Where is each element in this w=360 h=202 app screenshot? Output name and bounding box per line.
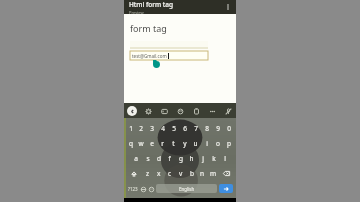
staticText: English: [179, 186, 195, 192]
staticText: h: [189, 154, 194, 163]
button[interactable]: q: [126, 136, 136, 151]
button[interactable]: c: [164, 166, 175, 181]
staticText: a: [134, 154, 138, 163]
button[interactable]: k: [208, 151, 219, 166]
button[interactable]: 7: [190, 120, 201, 136]
button[interactable]: 6: [179, 120, 190, 136]
button[interactable]: More: [207, 106, 217, 116]
staticText: l: [224, 154, 226, 163]
button[interactable]: x: [153, 166, 164, 181]
staticText: ?123: [128, 186, 138, 192]
staticText: x: [157, 169, 161, 178]
button[interactable]: v: [175, 166, 186, 181]
button[interactable]: m: [208, 166, 219, 181]
button[interactable]: 4: [157, 120, 168, 136]
button[interactable]: z: [142, 166, 153, 181]
staticText: Html form tag: [129, 0, 174, 9]
button[interactable]: a: [130, 151, 142, 166]
button[interactable]: Backspace: [219, 166, 234, 181]
button[interactable]: r: [157, 136, 168, 151]
button[interactable]: e: [146, 136, 157, 151]
button[interactable]: ?123: [127, 182, 139, 195]
button[interactable]: test@Gmail.com: [130, 51, 208, 60]
button[interactable]: 3: [146, 120, 157, 136]
staticText: 2: [139, 124, 143, 133]
button[interactable]: b: [186, 166, 197, 181]
button[interactable]: Voice off: [223, 106, 233, 116]
button[interactable]: Shift: [126, 166, 142, 181]
staticText: 0: [227, 124, 231, 133]
button[interactable]: f: [164, 151, 175, 166]
button[interactable]: Settings: [143, 106, 153, 116]
button[interactable]: p: [223, 136, 234, 151]
staticText: y: [183, 139, 187, 148]
staticText: 3: [150, 124, 154, 133]
button[interactable]: g: [175, 151, 186, 166]
staticText: r: [161, 139, 164, 148]
staticText: d: [157, 154, 161, 163]
staticText: o: [216, 139, 220, 148]
button[interactable]: Emoji: [147, 185, 155, 193]
button[interactable]: i: [201, 136, 212, 151]
staticText: 1: [129, 124, 133, 133]
button[interactable]: 8: [201, 120, 212, 136]
staticText: 8: [205, 124, 209, 133]
staticText: e: [150, 139, 154, 148]
button[interactable]: 9: [212, 120, 223, 136]
button[interactable]: 0: [223, 120, 234, 136]
staticText: 4: [161, 124, 165, 133]
staticText: i: [206, 139, 208, 148]
button[interactable]: u: [190, 136, 201, 151]
button[interactable]: j: [197, 151, 208, 166]
staticText: c: [168, 169, 172, 178]
button[interactable]: Language: [139, 185, 147, 193]
staticText: n: [200, 169, 205, 178]
button[interactable]: n: [197, 166, 208, 181]
button[interactable]: GIF: [159, 106, 169, 116]
button[interactable]: w: [136, 136, 146, 151]
staticText: v: [179, 169, 183, 178]
staticText: u: [193, 139, 198, 148]
button[interactable]: More options: [223, 2, 233, 12]
staticText: 5: [172, 124, 176, 133]
staticText: form tag: [130, 22, 167, 34]
button[interactable]: Stickers: [175, 106, 185, 116]
staticText: m: [210, 169, 217, 178]
button[interactable]: English: [156, 184, 217, 193]
button[interactable]: t: [168, 136, 179, 151]
staticText: k: [212, 154, 216, 163]
staticText: q: [129, 139, 133, 148]
staticText: s: [146, 154, 150, 163]
button[interactable]: Enter: [219, 184, 233, 193]
staticText: g: [179, 154, 183, 163]
staticText: 9: [216, 124, 220, 133]
button[interactable]: y: [179, 136, 190, 151]
button[interactable]: Clipboard: [191, 106, 201, 116]
staticText: f: [168, 154, 171, 163]
staticText: Preview: [129, 10, 144, 14]
staticText: 6: [183, 124, 187, 133]
button[interactable]: l: [219, 151, 230, 166]
staticText: b: [190, 169, 194, 178]
staticText: z: [146, 169, 150, 178]
button[interactable]: o: [212, 136, 223, 151]
staticText: p: [227, 139, 231, 148]
staticText: 7: [194, 124, 198, 133]
button[interactable]: 1: [126, 120, 136, 136]
staticText: test@Gmail.com: [132, 53, 167, 59]
button[interactable]: Back: [127, 106, 137, 116]
button[interactable]: [130, 41, 208, 48]
staticText: j: [202, 154, 204, 163]
button[interactable]: 5: [168, 120, 179, 136]
button[interactable]: h: [186, 151, 197, 166]
button[interactable]: 2: [136, 120, 146, 136]
staticText: w: [138, 139, 144, 148]
button[interactable]: d: [153, 151, 164, 166]
button[interactable]: s: [142, 151, 153, 166]
staticText: t: [172, 139, 175, 148]
